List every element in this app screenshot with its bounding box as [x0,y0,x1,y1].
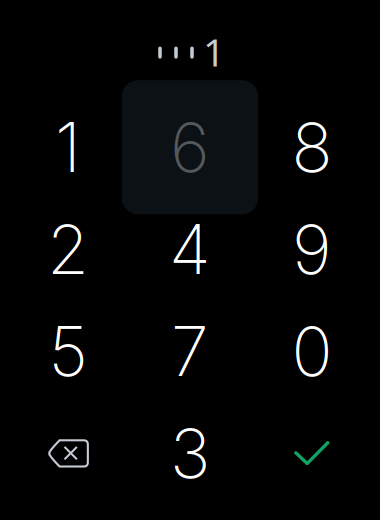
button[interactable]: 0 [251,300,373,402]
staticText: 5 [48,310,87,392]
staticText: 3 [170,412,210,494]
staticText: 6 [170,106,210,188]
staticText: 2 [47,208,89,290]
staticText: 1 [203,26,225,77]
staticText: 4 [169,208,211,290]
staticText: 9 [292,208,332,290]
button[interactable]: 2 [7,198,129,300]
button[interactable]: 8 [251,96,373,198]
button[interactable]: 3 [129,402,251,504]
button[interactable]: 6 [129,96,251,198]
staticText: 1 [55,106,81,188]
button[interactable]: 5 [7,300,129,402]
button[interactable]: Confirm [251,402,373,504]
staticText: 0 [291,310,332,392]
button[interactable]: 4 [129,198,251,300]
button[interactable]: 9 [251,198,373,300]
button[interactable]: 7 [129,300,251,402]
button[interactable]: Delete [7,402,129,504]
staticText: 8 [291,106,332,188]
button[interactable]: 1 [7,96,129,198]
staticText: 7 [171,310,209,392]
